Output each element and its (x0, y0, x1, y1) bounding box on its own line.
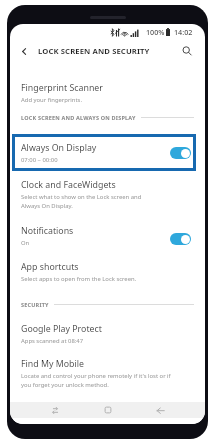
staticText: Always On Display (21, 142, 97, 154)
staticText: Fingerprint Scanner (21, 82, 103, 94)
button[interactable]: Back (153, 403, 167, 417)
staticText: Notifications (21, 225, 74, 237)
staticText: Select what to show on the Lock screen a… (21, 193, 142, 209)
staticText: Find My Mobile (21, 358, 84, 370)
staticText: 14:02 (174, 27, 193, 37)
staticText: 07:00 ~ 00:00 (21, 156, 58, 164)
button[interactable]: Back (10, 40, 38, 62)
button[interactable]: Home (101, 403, 115, 417)
button[interactable]: Fingerprint Scanner (10, 82, 205, 104)
staticText: LOCK SCREEN AND SECURITY (38, 46, 150, 56)
button[interactable]: Search (174, 40, 199, 62)
staticText: SECURITY (21, 301, 49, 308)
staticText: LOCK SCREEN AND ALWAYS ON DISPLAY (21, 114, 136, 121)
staticText: 100% (146, 27, 165, 37)
staticText: Google Play Protect (21, 323, 102, 335)
button[interactable]: Notifications (10, 225, 205, 247)
staticText: Clock and FaceWidgets (21, 179, 116, 191)
button[interactable]: Find My Mobile (10, 358, 205, 388)
staticText: Select apps to open from the Lock screen… (21, 275, 137, 283)
button[interactable]: Google Play Protect (10, 323, 205, 345)
button[interactable]: App shortcuts (10, 261, 205, 283)
staticText: Add your fingerprints. (21, 96, 83, 104)
button[interactable]: Clock and FaceWidgets (10, 179, 205, 209)
staticText: App shortcuts (21, 261, 79, 273)
staticText: Apps scanned at 08:47 (21, 337, 84, 345)
staticText: Locate and control your phone remotely i… (21, 372, 171, 388)
button[interactable]: Recent apps (48, 403, 62, 417)
staticText: On (21, 239, 30, 247)
button[interactable]: Always On Display (12, 134, 196, 171)
